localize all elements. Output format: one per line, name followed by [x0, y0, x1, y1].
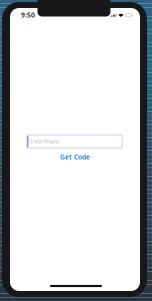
staticText: Enter Phone [30, 138, 59, 145]
button[interactable]: Enter Phone [27, 135, 122, 148]
staticText: 9:50 [21, 11, 35, 19]
staticText: Get Code [60, 153, 90, 161]
button[interactable]: Get Code [55, 152, 95, 162]
